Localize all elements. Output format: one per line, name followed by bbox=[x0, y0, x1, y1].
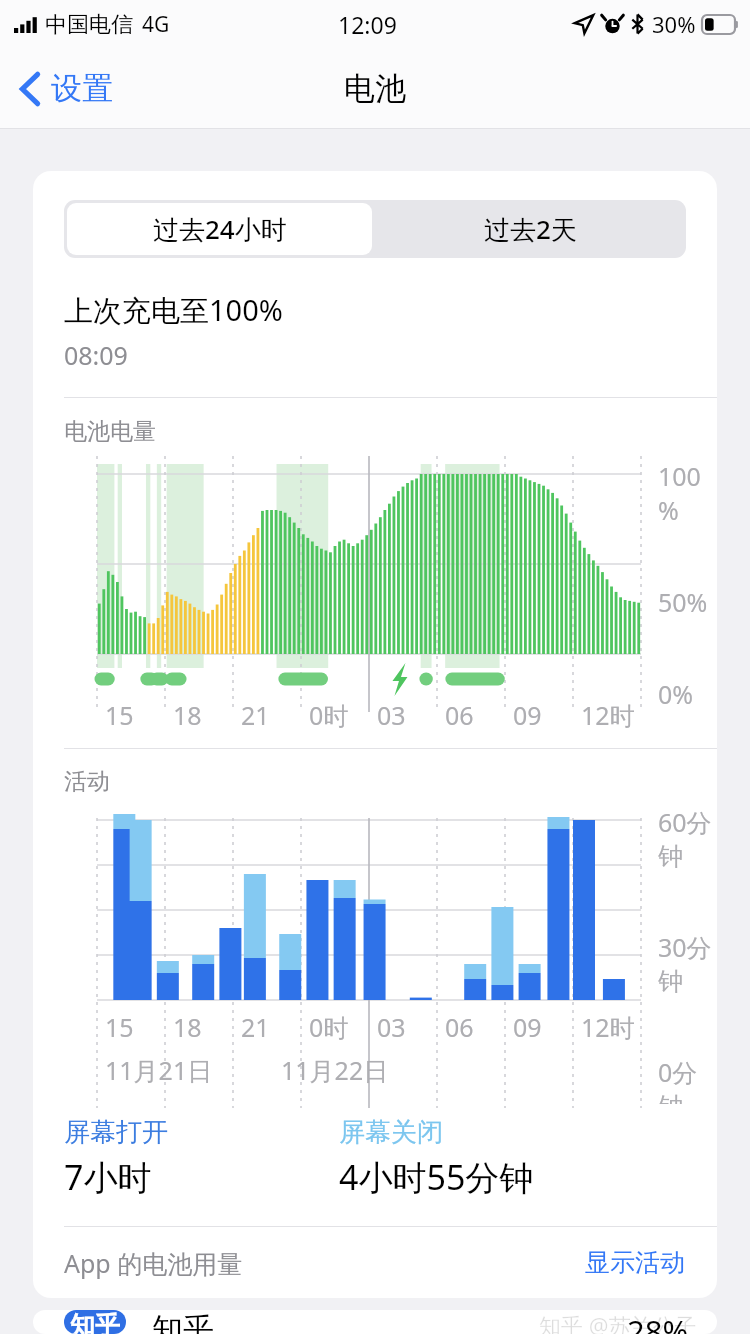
staticText: 15 bbox=[105, 1010, 134, 1044]
staticText: 100% bbox=[658, 459, 717, 527]
staticText: 08:09 bbox=[64, 338, 128, 372]
staticText: 上次充电至100% bbox=[64, 290, 283, 330]
button[interactable]: 过去24小时 bbox=[67, 203, 372, 255]
staticText: 21 bbox=[241, 698, 270, 732]
staticText: 显示活动 bbox=[585, 1247, 685, 1278]
staticText: 设置 bbox=[51, 69, 113, 108]
staticText: 中国电信 bbox=[45, 11, 133, 39]
staticText: 0% bbox=[658, 677, 694, 711]
staticText: 06 bbox=[445, 698, 474, 732]
staticText: 12时 bbox=[581, 1010, 635, 1044]
staticText: 11月22日 bbox=[281, 1053, 389, 1087]
button[interactable]: 过去2天 bbox=[375, 200, 686, 258]
staticText: 03 bbox=[377, 698, 406, 732]
staticText: 15 bbox=[105, 698, 134, 732]
staticText: 屏幕打开 bbox=[64, 1116, 168, 1149]
staticText: 30% bbox=[652, 9, 696, 39]
staticText: 电池 bbox=[344, 69, 406, 108]
staticText: 0分钟 bbox=[658, 1055, 717, 1104]
staticText: 4小时55分钟 bbox=[339, 1154, 534, 1200]
staticText: 09 bbox=[513, 1010, 542, 1044]
staticText: 电池电量 bbox=[64, 417, 156, 446]
staticText: 活动 bbox=[64, 767, 110, 796]
staticText: 知乎 @苏兰公子 bbox=[539, 1310, 697, 1334]
staticText: 7小时 bbox=[64, 1154, 152, 1200]
staticText: App 的电池用量 bbox=[64, 1246, 243, 1280]
staticText: 过去24小时 bbox=[153, 211, 287, 247]
staticText: 过去2天 bbox=[484, 211, 577, 247]
button[interactable]: 显示活动 bbox=[581, 1243, 689, 1282]
button[interactable]: 设置 bbox=[14, 63, 119, 114]
staticText: 18 bbox=[173, 698, 202, 732]
staticText: 21 bbox=[241, 1010, 270, 1044]
staticText: 06 bbox=[445, 1010, 474, 1044]
staticText: 11月21日 bbox=[105, 1053, 213, 1087]
staticText: 09 bbox=[513, 698, 542, 732]
staticText: 12:09 bbox=[338, 9, 397, 40]
staticText: 03 bbox=[377, 1010, 406, 1044]
staticText: 60分钟 bbox=[658, 805, 717, 873]
staticText: 12时 bbox=[581, 698, 635, 732]
staticText: 50% bbox=[658, 585, 708, 619]
button[interactable]: 知乎 bbox=[33, 1310, 717, 1334]
staticText: 18 bbox=[173, 1010, 202, 1044]
staticText: 30分钟 bbox=[658, 930, 717, 998]
staticText: 0时 bbox=[309, 698, 349, 732]
staticText: 0时 bbox=[309, 1010, 349, 1044]
staticText: 知乎 bbox=[70, 1310, 120, 1334]
staticText: 28% bbox=[627, 1310, 689, 1334]
staticText: 屏幕关闭 bbox=[339, 1116, 443, 1149]
staticText: 知乎 bbox=[152, 1310, 214, 1334]
staticText: 4G bbox=[142, 10, 170, 39]
